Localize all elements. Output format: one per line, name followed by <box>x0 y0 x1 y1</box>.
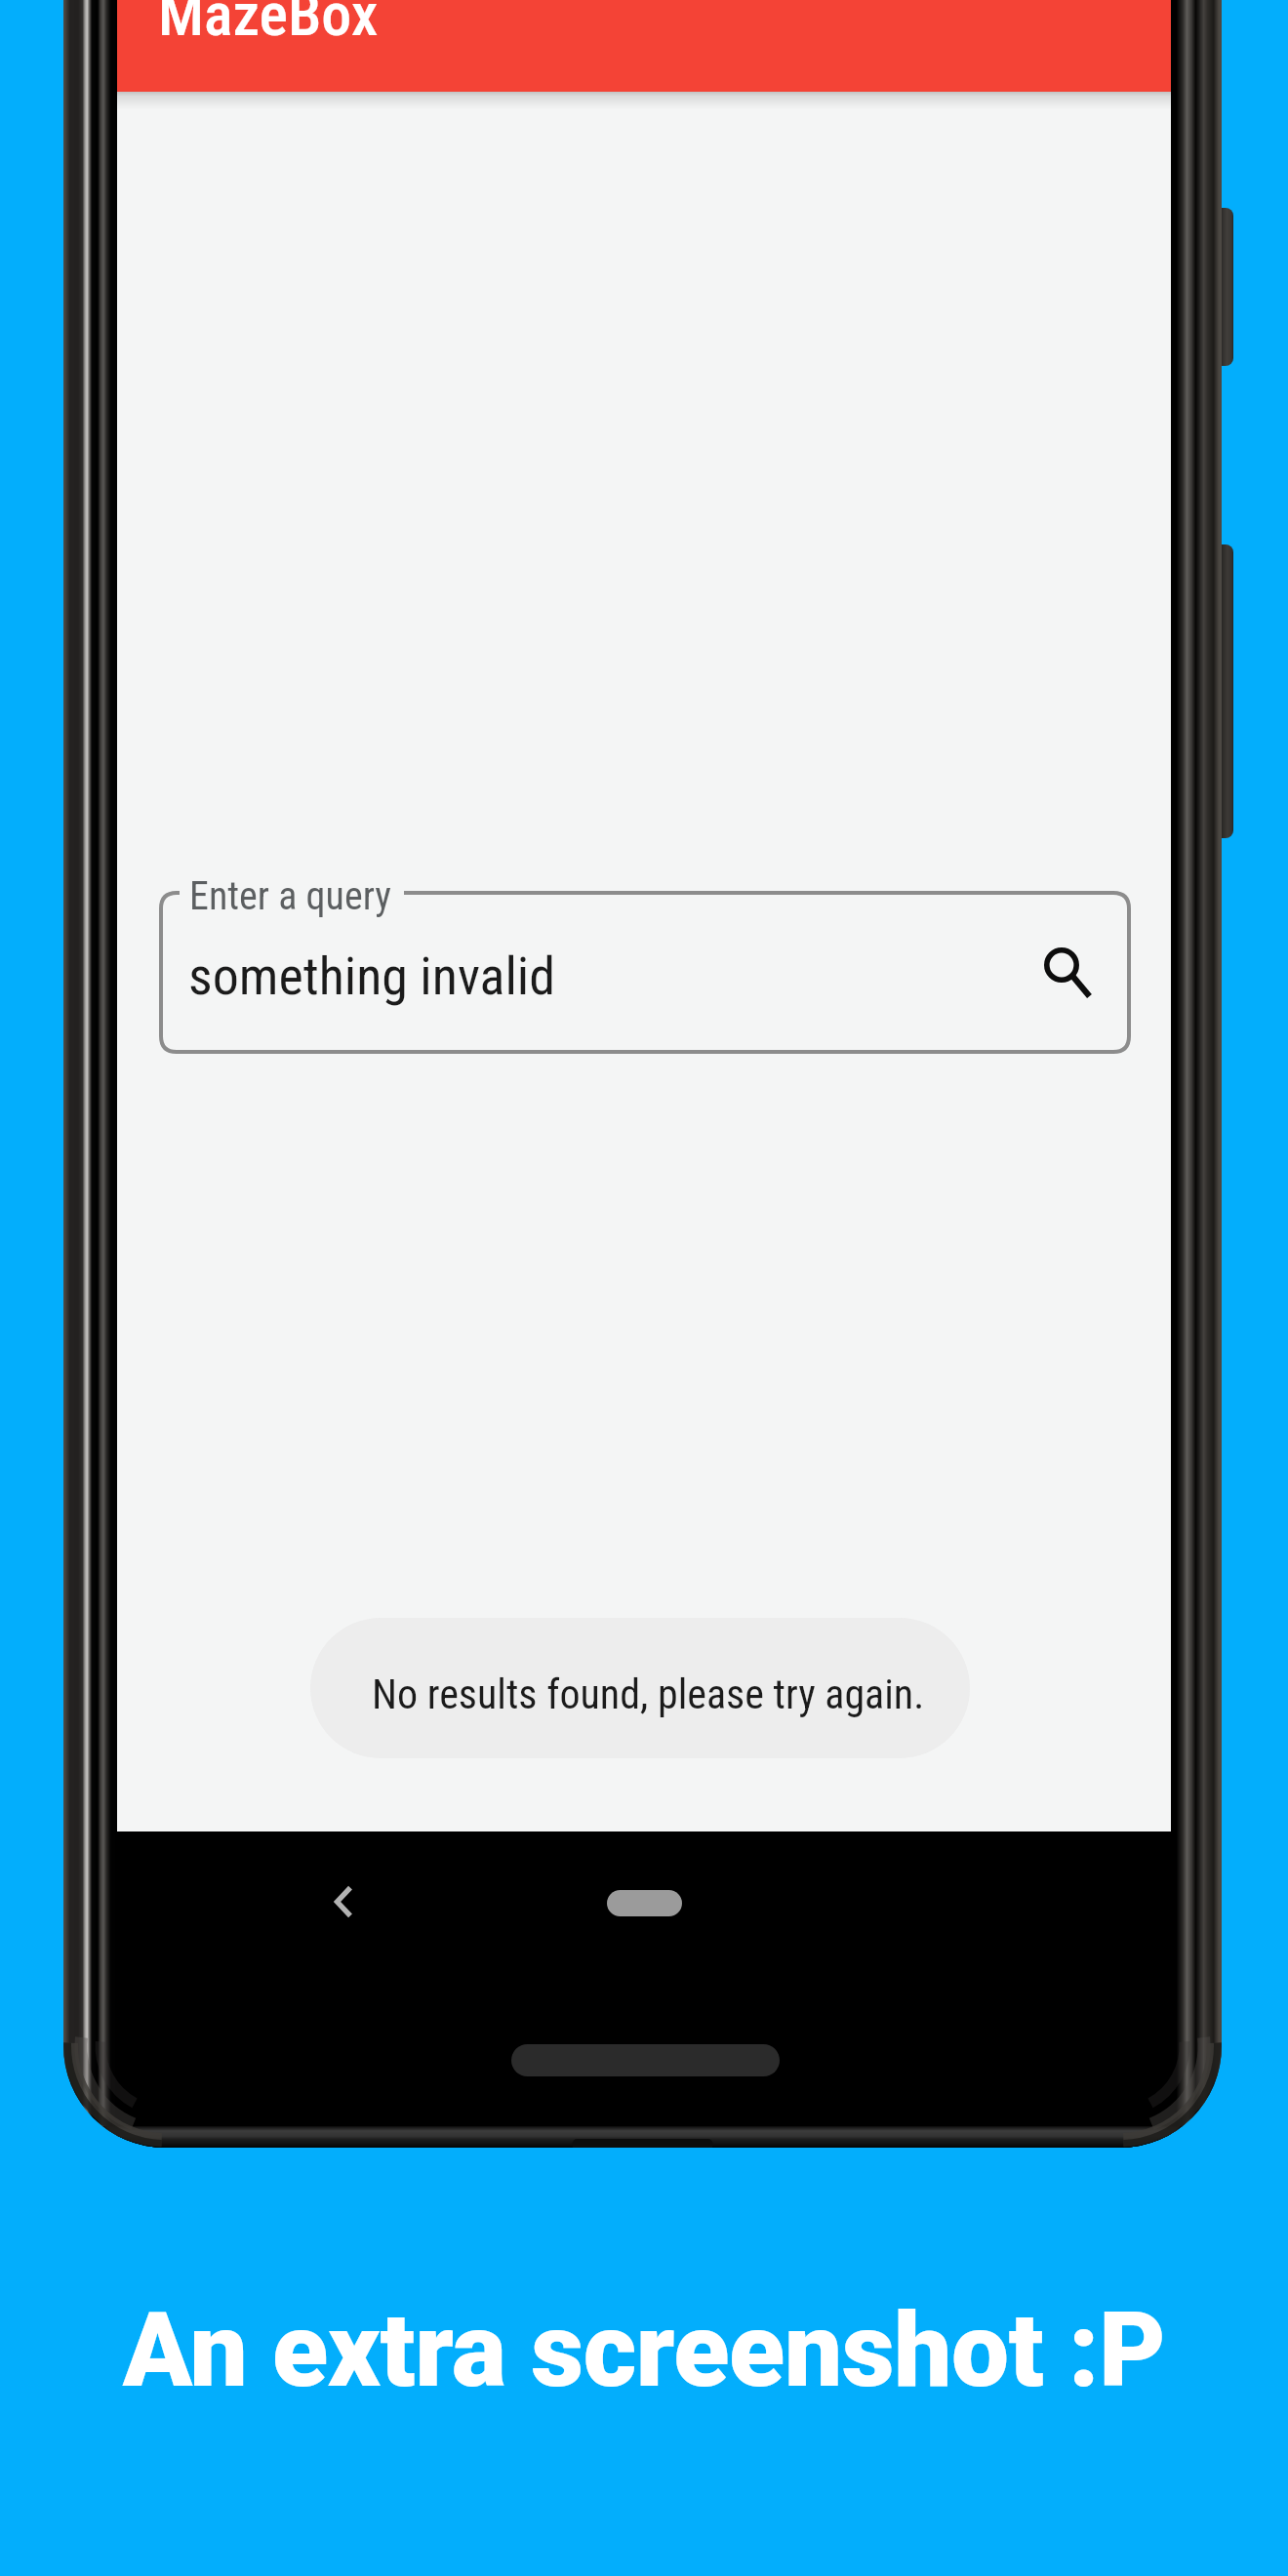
button[interactable]: Home <box>607 1890 682 1916</box>
button[interactable]: Search <box>1015 918 1108 1012</box>
staticText: Enter a query <box>189 873 391 919</box>
button[interactable]: Back <box>315 1872 374 1931</box>
staticText: No results found, please try again. <box>372 1670 925 1718</box>
staticText: MazeBox <box>158 0 379 50</box>
button[interactable]: No results found, please try again. <box>310 1618 970 1758</box>
staticText: something invalid <box>188 946 556 1007</box>
staticText: An extra screenshot :P <box>0 2291 1288 2411</box>
button[interactable]: Enter a query <box>159 891 1131 1054</box>
